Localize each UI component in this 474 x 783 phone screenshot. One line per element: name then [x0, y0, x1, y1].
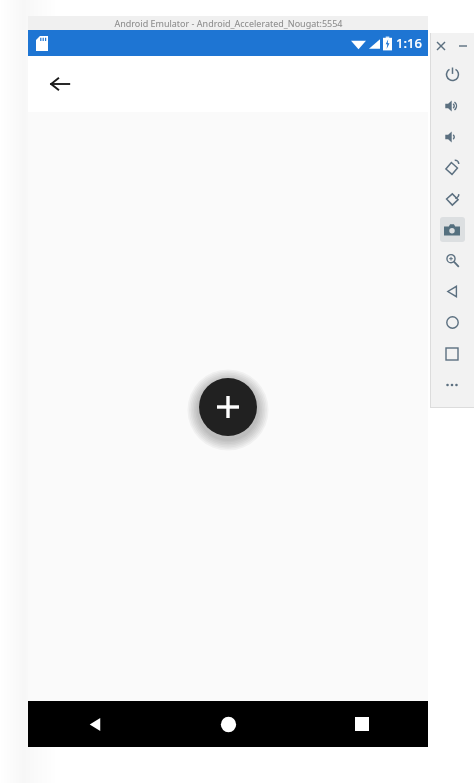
button[interactable]: Power	[430, 59, 474, 90]
button[interactable]: Home	[430, 307, 474, 338]
button[interactable]: Recent apps	[430, 338, 474, 369]
button[interactable]: Volume down	[430, 121, 474, 152]
button[interactable]: Zoom	[430, 245, 474, 276]
button[interactable]: Minimize	[452, 33, 474, 59]
staticText: Android Emulator - Android_Accelerated_N…	[114, 17, 343, 29]
button[interactable]: Add	[199, 378, 257, 436]
button[interactable]: Back	[430, 276, 474, 307]
staticText: 1:16	[396, 34, 422, 52]
button[interactable]: Rotate left	[430, 152, 474, 183]
button[interactable]: More	[430, 369, 474, 400]
button[interactable]: Navigate up	[38, 62, 82, 106]
button[interactable]: Close	[430, 33, 452, 59]
button[interactable]: Back	[28, 701, 162, 747]
button[interactable]: Take screenshot	[430, 214, 474, 245]
button[interactable]: Volume up	[430, 90, 474, 121]
button[interactable]: Home	[162, 701, 295, 747]
button[interactable]: Rotate right	[430, 183, 474, 214]
button[interactable]: Recent apps	[295, 701, 428, 747]
